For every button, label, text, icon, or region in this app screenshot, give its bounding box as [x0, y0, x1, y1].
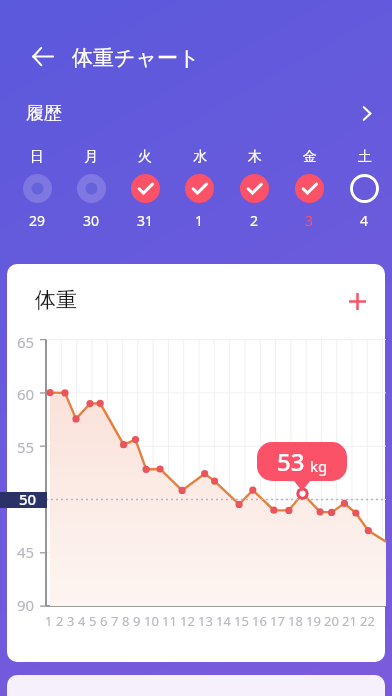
staticText: 1	[195, 211, 204, 230]
staticText: 90	[17, 595, 35, 611]
staticText: 18	[288, 612, 303, 630]
button[interactable]: 月	[64, 148, 118, 230]
button[interactable]: Add entry	[344, 288, 370, 314]
staticText: 2	[250, 211, 259, 230]
button[interactable]: 履歴	[0, 90, 392, 137]
staticText: kg	[310, 456, 328, 476]
staticText: 日	[30, 148, 44, 166]
staticText: 火	[138, 148, 152, 166]
staticText: 2	[56, 612, 64, 630]
staticText: 履歴	[26, 102, 62, 125]
staticText: 10	[144, 612, 159, 630]
staticText: 5	[89, 612, 97, 630]
button[interactable]: 木	[227, 148, 282, 230]
staticText: 4	[78, 612, 86, 630]
staticText: 体重チャート	[72, 45, 200, 71]
staticText: 6	[100, 612, 108, 630]
staticText: 55	[17, 437, 35, 453]
staticText: 9	[133, 612, 141, 630]
staticText: 13	[198, 612, 213, 630]
staticText: 月	[84, 148, 98, 166]
staticText: 17	[270, 612, 285, 630]
staticText: 30	[83, 211, 100, 230]
staticText: 金	[303, 148, 317, 166]
staticText: 土	[358, 148, 372, 166]
button[interactable]: 火	[118, 148, 172, 230]
staticText: 体重	[35, 287, 77, 313]
staticText: 22	[360, 612, 375, 630]
staticText: 11	[162, 612, 177, 630]
staticText: 3	[67, 612, 75, 630]
staticText: 53	[277, 445, 305, 478]
staticText: 31	[137, 211, 154, 230]
button[interactable]: 水	[172, 148, 227, 230]
staticText: 4	[360, 211, 369, 230]
staticText: 1	[45, 612, 53, 630]
staticText: 20	[324, 612, 339, 630]
staticText: 15	[234, 612, 249, 630]
staticText: 60	[17, 384, 35, 400]
staticText: 45	[17, 542, 35, 558]
staticText: 12	[180, 612, 195, 630]
staticText: 水	[193, 148, 207, 166]
button[interactable]: 日	[10, 148, 64, 230]
staticText: 14	[216, 612, 231, 630]
button[interactable]: 土	[337, 148, 392, 230]
staticText: 65	[17, 332, 35, 348]
button[interactable]: 金	[282, 148, 337, 230]
staticText: 3	[305, 211, 314, 230]
staticText: 8	[122, 612, 130, 630]
staticText: 29	[29, 211, 46, 230]
staticText: 21	[342, 612, 357, 630]
staticText: 50	[19, 489, 37, 505]
staticText: 16	[252, 612, 267, 630]
staticText: 木	[248, 148, 262, 166]
staticText: 7	[111, 612, 119, 630]
button[interactable]: Back	[27, 41, 57, 71]
staticText: 19	[306, 612, 321, 630]
